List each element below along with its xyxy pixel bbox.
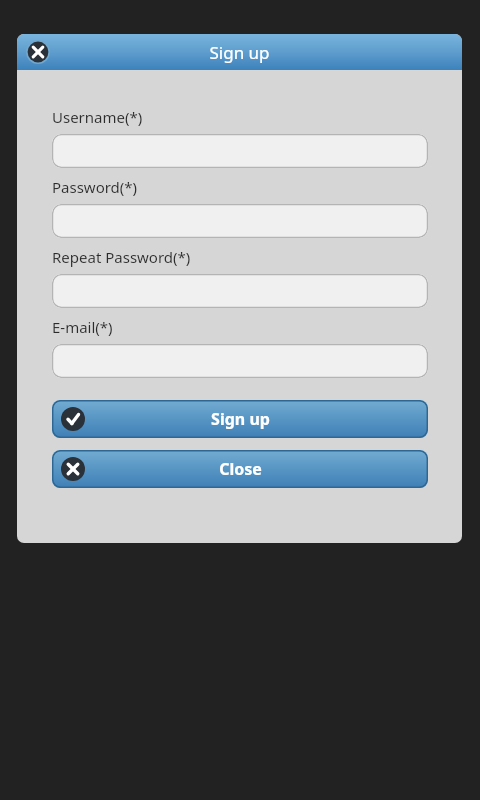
button[interactable] [52, 344, 428, 378]
staticText: Password(*) [52, 177, 138, 197]
button[interactable] [52, 204, 428, 238]
staticText: Repeat Password(*) [52, 247, 191, 267]
button[interactable]: Sign up [52, 400, 428, 438]
staticText: Close [219, 458, 262, 480]
button[interactable] [52, 274, 428, 308]
staticText: Sign up [209, 41, 270, 64]
button[interactable]: Close dialog [24, 38, 52, 66]
staticText: Username(*) [52, 107, 143, 127]
button[interactable] [52, 134, 428, 168]
button[interactable]: Close [52, 450, 428, 488]
staticText: E-mail(*) [52, 317, 113, 337]
staticText: Sign up [211, 408, 270, 430]
